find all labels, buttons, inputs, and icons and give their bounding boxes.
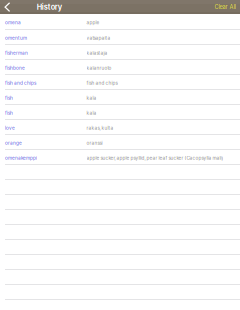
staticText: kalanruoto xyxy=(86,65,111,71)
staticText: omentum xyxy=(5,35,27,41)
staticText: apple sucker, apple psyllid, pear leaf s… xyxy=(86,155,223,161)
button[interactable]: Clear All xyxy=(215,0,240,14)
staticText: omena xyxy=(5,20,21,25)
staticText: rakas, kulta xyxy=(86,125,113,131)
staticText: History xyxy=(37,3,62,11)
staticText: love xyxy=(5,125,15,131)
button[interactable]: fish xyxy=(0,90,240,104)
button[interactable]: Back xyxy=(0,0,15,14)
staticText: fish xyxy=(5,95,13,101)
button[interactable]: omenakemppi xyxy=(0,150,240,164)
button[interactable]: fish xyxy=(0,105,240,119)
staticText: apple xyxy=(86,20,99,25)
button[interactable]: omentum xyxy=(0,30,240,44)
staticText: fish and chips xyxy=(5,80,36,86)
button[interactable]: fish and chips xyxy=(0,75,240,89)
staticText: kala xyxy=(86,110,96,116)
staticText: oranssi xyxy=(86,140,102,146)
staticText: kala xyxy=(86,95,96,101)
staticText: fish and chips xyxy=(86,80,117,86)
staticText: kalastaja xyxy=(86,50,107,56)
staticText: fisherman xyxy=(5,50,28,56)
staticText: omenakemppi xyxy=(5,155,37,161)
staticText: orange xyxy=(5,140,22,146)
staticText: Clear All xyxy=(215,4,236,10)
button[interactable]: fisherman xyxy=(0,45,240,59)
button[interactable]: love xyxy=(0,120,240,134)
button[interactable]: omena xyxy=(0,14,240,29)
button[interactable]: orange xyxy=(0,135,240,149)
staticText: fishbone xyxy=(5,65,25,71)
staticText: vatsapaita xyxy=(86,35,110,41)
staticText: fish xyxy=(5,110,13,116)
button[interactable]: fishbone xyxy=(0,60,240,74)
